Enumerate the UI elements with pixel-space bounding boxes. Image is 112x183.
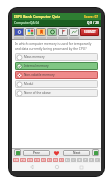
button[interactable]: Non-volatile memory: [15, 71, 98, 79]
button[interactable]: Prev: [23, 150, 50, 156]
button[interactable]: Mass memory: [15, 53, 98, 61]
button[interactable]: 13: [89, 158, 94, 162]
button[interactable]: 11: [77, 158, 82, 162]
staticText: 12: [84, 158, 87, 162]
button[interactable]: 6: [47, 158, 52, 162]
staticText: 9: [67, 158, 69, 162]
staticText: IBPS Bank Computer Quiz: [14, 14, 84, 19]
staticText: Non-volatile memory: [24, 73, 96, 77]
staticText: 8: [61, 158, 63, 162]
button[interactable]: Modul: [15, 80, 98, 88]
staticText: ComputerQA 04: [14, 21, 87, 25]
staticText: 7: [55, 158, 57, 162]
button[interactable]: Next: [63, 150, 90, 156]
button[interactable]: Last question: [92, 149, 99, 156]
staticText: 2: [22, 158, 24, 162]
button[interactable]: Home: [52, 163, 62, 171]
staticText: Internal memory: [24, 64, 96, 68]
button[interactable]: None of the above: [15, 89, 98, 97]
button[interactable]: Chart: [69, 28, 79, 36]
staticText: Next: [73, 151, 81, 155]
staticText: Score: 07: [84, 15, 99, 19]
staticText: In which computer memory is used for tem…: [15, 42, 98, 46]
button[interactable]: 14: [95, 158, 100, 162]
button[interactable]: Refresh: [47, 28, 57, 36]
staticText: Modul: [24, 82, 96, 86]
staticText: 14: [96, 158, 99, 162]
button[interactable]: Favourite: [52, 149, 61, 156]
button[interactable]: Info: [14, 28, 24, 36]
button[interactable]: 7: [53, 158, 58, 162]
button[interactable]: SUBMIT: [80, 28, 99, 36]
staticText: Q 8 / 20: [87, 21, 99, 25]
staticText: Prev: [33, 151, 40, 155]
button[interactable]: Bookmark: [36, 28, 46, 36]
button[interactable]: Flag: [58, 28, 68, 36]
button[interactable]: 8: [59, 158, 64, 162]
button[interactable]: 2: [20, 158, 26, 162]
staticText: 11: [78, 158, 81, 162]
button[interactable]: 3: [27, 158, 33, 162]
staticText: None of the above: [24, 91, 96, 95]
button[interactable]: First question: [14, 149, 21, 156]
staticText: 3: [29, 158, 31, 162]
button[interactable]: 9: [65, 158, 70, 162]
staticText: 4: [36, 158, 38, 162]
staticText: and data currently being processed by th…: [15, 47, 98, 51]
button[interactable]: 10: [71, 158, 76, 162]
staticText: 13: [90, 158, 93, 162]
button[interactable]: 12: [83, 158, 88, 162]
button[interactable]: 5: [41, 158, 46, 162]
staticText: 1: [15, 158, 17, 162]
button[interactable]: Colors: [25, 28, 35, 36]
staticText: Mass memory: [24, 55, 96, 59]
button[interactable]: Recent apps: [76, 163, 86, 171]
staticText: 5: [43, 158, 45, 162]
button[interactable]: 1: [13, 158, 19, 162]
staticText: 10: [72, 158, 75, 162]
staticText: SUBMIT: [84, 30, 96, 34]
staticText: 6: [49, 158, 51, 162]
button[interactable]: Internal memory: [15, 62, 98, 70]
button[interactable]: Back: [27, 163, 37, 171]
button[interactable]: 4: [34, 158, 40, 162]
